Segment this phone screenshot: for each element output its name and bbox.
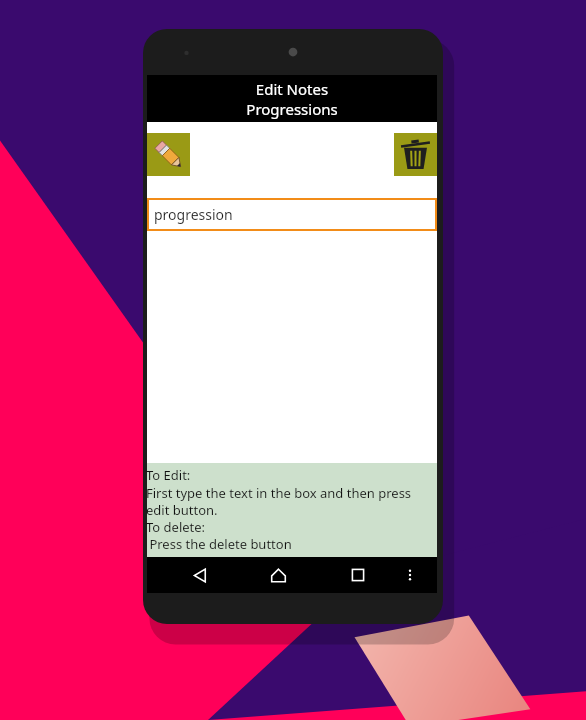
staticText: To Edit: First type the text in the box … [146, 466, 412, 553]
button[interactable]: Recent apps [318, 557, 397, 593]
button[interactable]: Edit note [147, 133, 190, 176]
button[interactable]: Back [161, 557, 239, 593]
button[interactable]: progression [147, 198, 437, 231]
staticText: progression [154, 205, 233, 224]
button[interactable]: Home [239, 557, 318, 593]
staticText: Edit Notes Progressions [246, 79, 338, 119]
button[interactable]: Delete note [394, 133, 437, 176]
button[interactable]: More options [397, 557, 423, 593]
